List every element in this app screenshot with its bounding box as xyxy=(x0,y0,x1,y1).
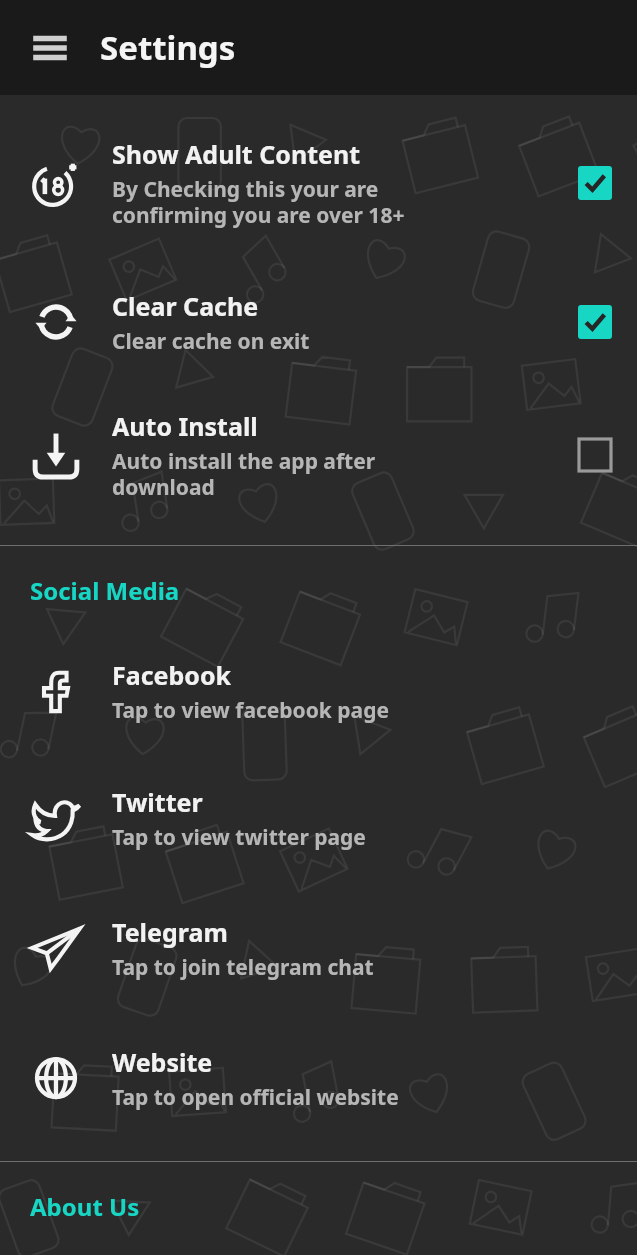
staticText: By Checking this your are confirming you… xyxy=(112,175,405,230)
staticText: Tap to open official website xyxy=(112,1083,399,1112)
staticText: Tap to view twitter page xyxy=(112,823,366,852)
button[interactable]: Clear Cache toggle xyxy=(0,257,637,387)
button[interactable]: Telegram xyxy=(0,883,637,1013)
button[interactable]: Show Adult Content toggle xyxy=(0,109,637,257)
staticText: About Us xyxy=(30,1190,140,1223)
button[interactable]: Social Media xyxy=(0,546,637,615)
staticText: Twitter xyxy=(112,785,203,819)
staticText: Social Media xyxy=(30,574,180,607)
staticText: Website xyxy=(112,1045,213,1079)
staticText: Show Adult Content xyxy=(112,137,361,171)
staticText: Clear Cache xyxy=(112,289,259,323)
staticText: Telegram xyxy=(112,915,228,949)
staticText: Auto install the app after download xyxy=(112,447,376,502)
button[interactable]: Facebook xyxy=(0,629,637,753)
staticText: Settings xyxy=(100,25,236,70)
staticText: Tap to join telegram chat xyxy=(112,953,374,982)
button[interactable]: About Us xyxy=(0,1162,637,1231)
staticText: Tap to view facebook page xyxy=(112,696,390,725)
staticText: Auto Install xyxy=(112,409,258,443)
button[interactable]: Website xyxy=(0,1013,637,1143)
staticText: Clear cache on exit xyxy=(112,327,310,356)
button[interactable]: Twitter xyxy=(0,753,637,883)
staticText: Facebook xyxy=(112,658,232,692)
button[interactable]: Auto Install toggle xyxy=(0,387,637,523)
button[interactable]: Open navigation menu xyxy=(0,0,100,95)
